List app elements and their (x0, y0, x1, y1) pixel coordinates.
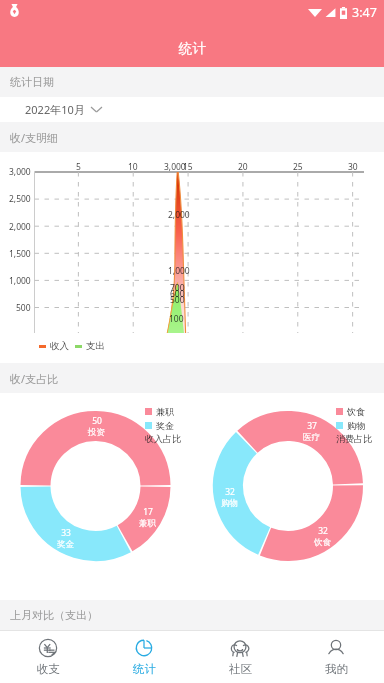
staticText: 奖金 (57, 539, 74, 550)
staticText: 1,000 (168, 265, 190, 277)
staticText: 3,000 (9, 166, 31, 178)
button[interactable]: 社区 (192, 631, 288, 683)
staticText: 饮食 (314, 537, 331, 548)
staticText: 2,000 (168, 209, 190, 221)
staticText: 700 (170, 282, 185, 294)
button[interactable]: 统计 (96, 631, 192, 683)
staticText: 收入占比 (145, 433, 181, 444)
staticText: 3,000 (164, 161, 186, 173)
staticText: 50 (92, 415, 102, 427)
staticText: 3:47 (352, 4, 377, 21)
staticText: 17 (143, 506, 153, 518)
staticText: 37 (307, 420, 317, 432)
staticText: 兼职 (156, 406, 174, 417)
staticText: 10 (128, 161, 138, 173)
staticText: 600 (170, 288, 185, 300)
staticText: 医疗 (303, 432, 320, 443)
button[interactable]: 收支 (0, 631, 96, 683)
button[interactable]: 我的 (288, 631, 384, 683)
staticText: 支出 (86, 340, 105, 352)
staticText: 购物 (347, 420, 365, 431)
staticText: 消费占比 (336, 433, 372, 444)
staticText: 32 (318, 525, 328, 537)
staticText: 20 (238, 161, 248, 173)
staticText: 500 (16, 302, 31, 314)
staticText: 1,000 (9, 275, 31, 287)
staticText: 社区 (229, 662, 252, 676)
staticText: 收入 (50, 340, 69, 352)
staticText: 上月对比（支出） (10, 608, 98, 622)
staticText: 统计 (133, 662, 156, 676)
staticText: 奖金 (156, 420, 174, 431)
staticText: 购物 (221, 498, 238, 509)
staticText: 25 (293, 161, 303, 173)
staticText: 500 (170, 294, 185, 306)
staticText: 饮食 (347, 406, 365, 417)
staticText: 收支 (37, 662, 60, 676)
staticText: 5 (76, 161, 81, 173)
staticText: 统计 (179, 40, 206, 57)
staticText: 15 (183, 161, 193, 173)
staticText: 100 (169, 313, 184, 325)
button[interactable]: 2022年10月 (0, 97, 384, 122)
staticText: 投资 (88, 427, 105, 438)
staticText: 2022年10月 (25, 102, 85, 117)
staticText: 我的 (325, 662, 348, 676)
staticText: 2,000 (9, 221, 31, 233)
staticText: 收/支占比 (10, 371, 59, 386)
staticText: 统计日期 (10, 75, 54, 89)
staticText: 兼职 (139, 518, 156, 529)
staticText: 32 (225, 486, 235, 498)
staticText: 2,500 (9, 193, 31, 205)
staticText: 收/支明细 (10, 130, 59, 145)
staticText: 30 (348, 161, 358, 173)
staticText: 1,500 (9, 248, 31, 260)
staticText: 33 (61, 527, 71, 539)
